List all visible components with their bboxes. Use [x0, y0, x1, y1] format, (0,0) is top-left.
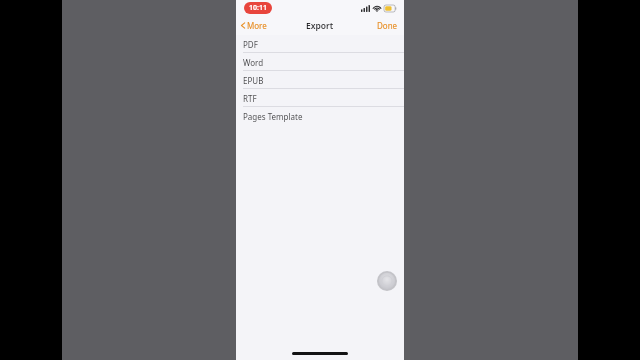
staticText: RTF	[243, 93, 257, 104]
staticText: Done	[377, 20, 398, 31]
staticText: Word	[243, 57, 264, 68]
staticText: 10:11	[249, 3, 267, 13]
staticText: More	[247, 20, 267, 31]
button[interactable]: AssistiveTouch	[377, 271, 397, 291]
button[interactable]: Word	[236, 53, 404, 71]
button[interactable]: RTF	[236, 89, 404, 107]
staticText: Pages Template	[243, 111, 303, 122]
button[interactable]: PDF	[236, 35, 404, 53]
button[interactable]: EPUB	[236, 71, 404, 89]
button[interactable]: Done	[371, 17, 404, 34]
staticText: Export	[306, 20, 334, 32]
button[interactable]: Pages Template	[236, 107, 404, 125]
staticText: EPUB	[243, 75, 264, 86]
button[interactable]: More	[236, 17, 273, 34]
staticText: PDF	[243, 39, 258, 50]
